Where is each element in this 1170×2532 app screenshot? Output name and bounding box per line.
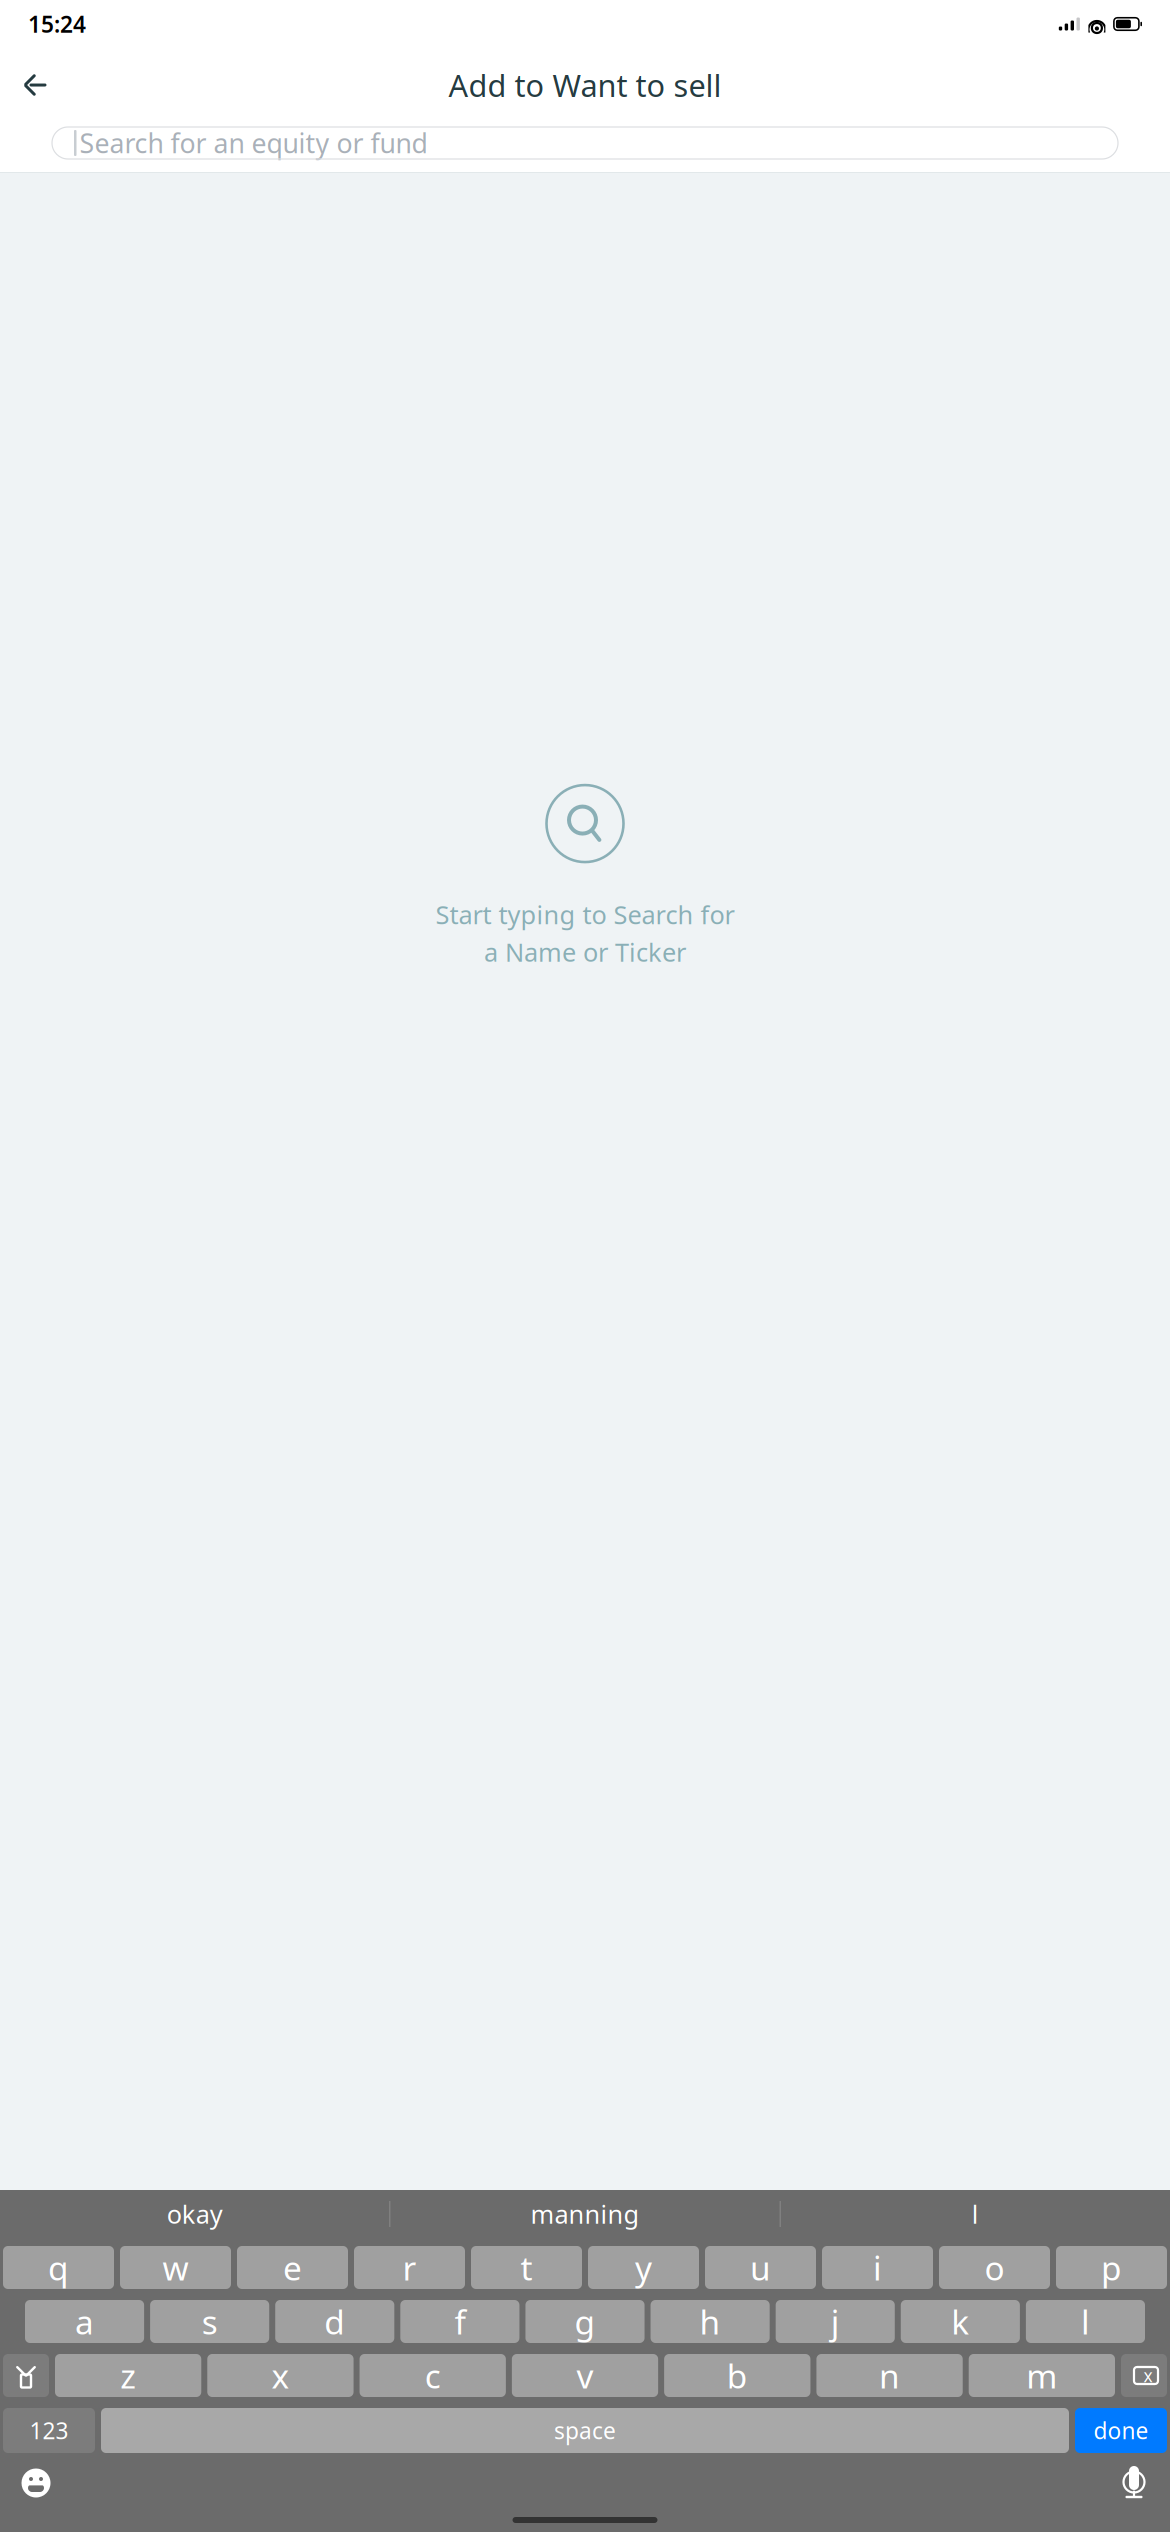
- staticText: r: [402, 2245, 416, 2290]
- button[interactable]: Shift: [3, 2354, 49, 2397]
- staticText: done: [1093, 2415, 1148, 2445]
- staticText: z: [120, 2353, 136, 2398]
- button[interactable]: Delete: [1121, 2354, 1167, 2397]
- button[interactable]: y: [588, 2246, 699, 2289]
- staticText: manning: [530, 2197, 639, 2231]
- button[interactable]: Dictation: [1112, 2461, 1156, 2505]
- staticText: s: [202, 2299, 218, 2344]
- button[interactable]: manning: [390, 2190, 780, 2238]
- staticText: 15:24: [28, 9, 86, 39]
- staticText: e: [283, 2245, 302, 2290]
- button[interactable]: p: [1056, 2246, 1167, 2289]
- button[interactable]: q: [3, 2246, 114, 2289]
- button[interactable]: m: [969, 2354, 1115, 2397]
- staticText: Add to Want to sell: [448, 65, 721, 105]
- button[interactable]: c: [360, 2354, 506, 2397]
- staticText: m: [1026, 2353, 1057, 2398]
- button[interactable]: done: [1075, 2408, 1167, 2453]
- staticText: p: [1101, 2245, 1122, 2290]
- staticText: h: [700, 2299, 721, 2344]
- button[interactable]: e: [237, 2246, 348, 2289]
- staticText: l: [1081, 2299, 1090, 2344]
- staticText: w: [162, 2245, 188, 2290]
- button[interactable]: z: [55, 2354, 201, 2397]
- staticText: u: [750, 2245, 771, 2290]
- button[interactable]: space: [101, 2408, 1069, 2453]
- button[interactable]: 123: [3, 2408, 95, 2453]
- button[interactable]: o: [939, 2246, 1050, 2289]
- button[interactable]: Emoji keyboard: [14, 2461, 58, 2505]
- staticText: k: [951, 2299, 969, 2344]
- button[interactable]: x: [207, 2354, 354, 2397]
- staticText: c: [425, 2353, 441, 2398]
- button[interactable]: d: [275, 2300, 394, 2343]
- staticText: okay: [167, 2197, 223, 2231]
- button[interactable]: l: [781, 2190, 1170, 2238]
- button[interactable]: l: [1026, 2300, 1145, 2343]
- button[interactable]: v: [512, 2354, 658, 2397]
- button[interactable]: w: [120, 2246, 231, 2289]
- button[interactable]: okay: [0, 2190, 389, 2238]
- staticText: n: [879, 2353, 900, 2398]
- button[interactable]: j: [776, 2300, 895, 2343]
- staticText: a: [75, 2299, 94, 2344]
- staticText: x: [1143, 2364, 1152, 2387]
- staticText: q: [48, 2245, 69, 2290]
- button[interactable]: s: [150, 2300, 269, 2343]
- staticText: j: [831, 2299, 840, 2344]
- staticText: o: [984, 2245, 1004, 2290]
- staticText: v: [576, 2353, 593, 2398]
- staticText: x: [271, 2353, 289, 2398]
- staticText: Start typing to Search for: [435, 898, 734, 931]
- staticText: y: [635, 2245, 652, 2290]
- button[interactable]: h: [651, 2300, 770, 2343]
- staticText: g: [574, 2299, 595, 2344]
- button[interactable]: t: [471, 2246, 582, 2289]
- staticText: b: [727, 2353, 748, 2398]
- button[interactable]: Back: [12, 62, 58, 108]
- button[interactable]: b: [664, 2354, 810, 2397]
- staticText: l: [972, 2197, 979, 2231]
- button[interactable]: Search for an equity or fund: [52, 127, 1118, 159]
- button[interactable]: k: [901, 2300, 1020, 2343]
- button[interactable]: u: [705, 2246, 816, 2289]
- staticText: Search for an equity or fund: [79, 125, 427, 161]
- button[interactable]: i: [822, 2246, 933, 2289]
- button[interactable]: r: [354, 2246, 465, 2289]
- staticText: i: [873, 2245, 882, 2290]
- staticText: 123: [29, 2415, 68, 2445]
- button[interactable]: g: [525, 2300, 644, 2343]
- staticText: a Name or Ticker: [484, 935, 686, 969]
- button[interactable]: a: [25, 2300, 144, 2343]
- staticText: d: [324, 2299, 345, 2344]
- button[interactable]: n: [816, 2354, 963, 2397]
- button[interactable]: f: [400, 2300, 519, 2343]
- staticText: t: [520, 2245, 532, 2290]
- staticText: space: [554, 2415, 616, 2445]
- staticText: f: [454, 2299, 465, 2344]
